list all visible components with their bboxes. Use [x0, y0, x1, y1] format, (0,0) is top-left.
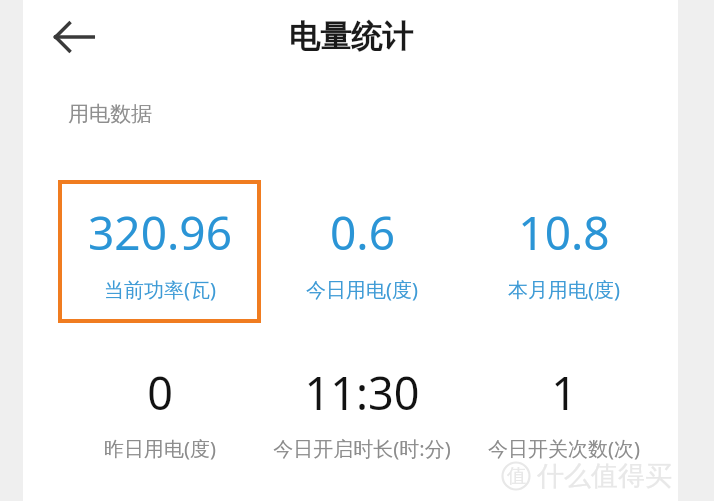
button[interactable]: Back — [46, 9, 102, 65]
button[interactable]: 10.8 — [463, 180, 665, 323]
staticText: 什么值得买 — [537, 459, 672, 493]
staticText: 320.96 — [88, 201, 232, 264]
button[interactable]: 11:30 — [261, 345, 463, 478]
staticText: 值 — [507, 464, 526, 488]
button[interactable]: 0.6 — [261, 180, 463, 323]
button[interactable]: 320.96 — [58, 180, 261, 323]
staticText: 10.8 — [518, 201, 610, 264]
staticText: 今日开关次数(次) — [488, 435, 640, 462]
staticText: 电量统计 — [289, 17, 413, 56]
staticText: 11:30 — [304, 362, 420, 423]
staticText: 今日开启时长(时:分) — [273, 435, 451, 462]
button[interactable]: 0 — [58, 345, 261, 478]
staticText: 本月用电(度) — [508, 276, 620, 303]
staticText: 用电数据 — [68, 101, 152, 127]
staticText: 0 — [147, 362, 173, 423]
staticText: 昨日用电(度) — [104, 435, 216, 462]
staticText: 今日用电(度) — [306, 276, 418, 303]
button[interactable]: 1 — [463, 345, 665, 478]
staticText: 1 — [551, 362, 577, 423]
staticText: 当前功率(瓦) — [104, 276, 216, 303]
staticText: 0.6 — [330, 201, 395, 264]
